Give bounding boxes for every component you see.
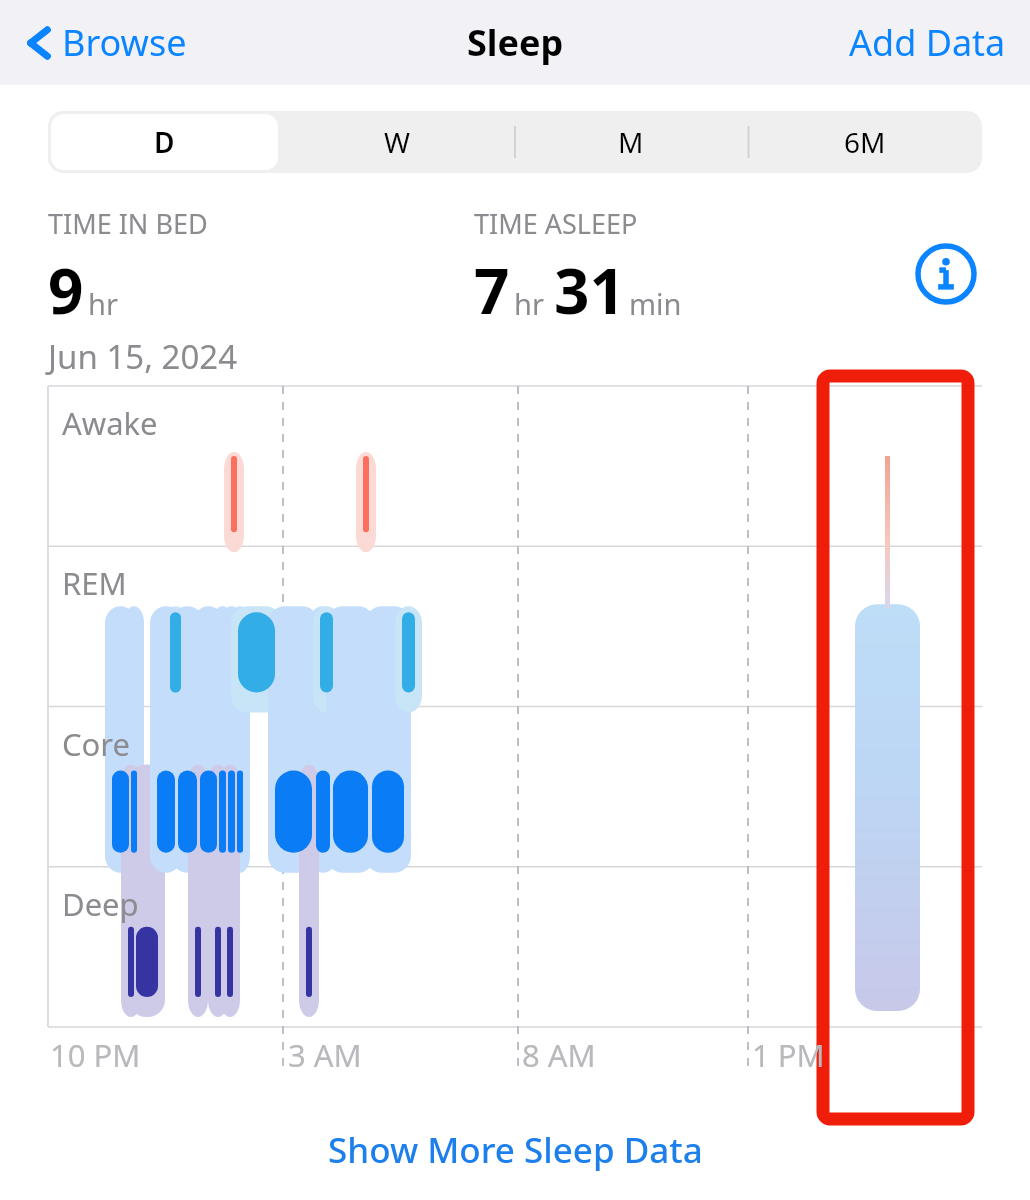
staticText: 1 PM bbox=[752, 1034, 825, 1076]
staticText: Core bbox=[62, 723, 131, 765]
staticText: hr bbox=[88, 284, 118, 323]
staticText: Awake bbox=[62, 402, 158, 444]
staticText: 3 AM bbox=[288, 1034, 362, 1076]
staticText: W bbox=[384, 123, 411, 161]
staticText: D bbox=[154, 123, 175, 161]
staticText: Show More Sleep Data bbox=[328, 1126, 703, 1174]
staticText: min bbox=[629, 284, 682, 323]
button[interactable]: Add Data bbox=[849, 18, 1006, 67]
staticText: hr bbox=[514, 284, 544, 323]
staticText: REM bbox=[62, 562, 127, 604]
staticText: Sleep bbox=[467, 18, 564, 67]
button[interactable]: W bbox=[284, 114, 511, 170]
button[interactable]: 6M bbox=[751, 114, 979, 170]
staticText: 7 bbox=[474, 248, 510, 332]
button[interactable]: M bbox=[517, 114, 745, 170]
staticText: Jun 15, 2024 bbox=[48, 334, 238, 379]
staticText: Add Data bbox=[849, 18, 1006, 67]
button[interactable]: Browse bbox=[24, 18, 187, 67]
staticText: 10 PM bbox=[50, 1034, 141, 1076]
button[interactable]: Show More Sleep Data bbox=[308, 1122, 723, 1178]
staticText: Browse bbox=[62, 18, 187, 67]
staticText: 9 bbox=[48, 248, 84, 332]
button[interactable]: D bbox=[51, 114, 278, 170]
staticText: 8 AM bbox=[522, 1034, 596, 1076]
staticText: 6M bbox=[844, 123, 886, 161]
staticText: Deep bbox=[62, 883, 139, 925]
button[interactable]: About sleep data bbox=[915, 243, 977, 305]
staticText: TIME ASLEEP bbox=[474, 205, 638, 242]
staticText: M bbox=[618, 123, 644, 161]
staticText: 31 bbox=[554, 248, 625, 332]
staticText: TIME IN BED bbox=[48, 205, 208, 242]
